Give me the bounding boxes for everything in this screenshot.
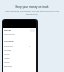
staticText: This month (4, 33, 15, 36)
button[interactable]: Checking (3, 44, 36, 48)
staticText: Track spending, set budgets and see ever… (4, 10, 60, 16)
button[interactable]: Loans (3, 60, 36, 64)
button[interactable]: Rewards (3, 64, 36, 68)
staticText: Cards (4, 53, 10, 56)
button[interactable]: Invest (3, 56, 36, 60)
button[interactable]: Cards (3, 52, 36, 56)
staticText: Checking (4, 45, 13, 48)
staticText: Accounts (4, 40, 14, 43)
staticText: Loans (4, 61, 10, 64)
staticText: Savings (4, 49, 12, 52)
button[interactable]: Savings (3, 48, 36, 52)
staticText: Rewards (4, 65, 13, 68)
staticText: Wallet (4, 29, 11, 32)
staticText: Invest (4, 57, 10, 60)
staticText: Keep your money on track (15, 5, 49, 9)
